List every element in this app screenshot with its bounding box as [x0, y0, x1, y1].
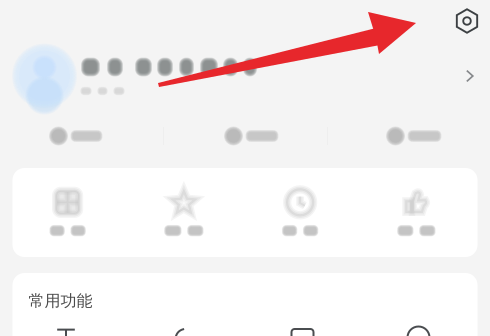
button[interactable]: [272, 325, 332, 336]
button[interactable]: [386, 123, 443, 149]
button[interactable]: [388, 324, 448, 336]
button[interactable]: [49, 123, 104, 149]
button[interactable]: [224, 123, 280, 149]
button[interactable]: [12, 168, 129, 257]
button[interactable]: [361, 168, 477, 257]
button[interactable]: [245, 168, 361, 257]
button[interactable]: Settings: [446, 0, 488, 42]
button[interactable]: [129, 168, 245, 257]
button[interactable]: [36, 322, 96, 336]
staticText: 常用功能: [28, 291, 92, 311]
button[interactable]: [0, 45, 490, 107]
button[interactable]: [149, 324, 209, 336]
